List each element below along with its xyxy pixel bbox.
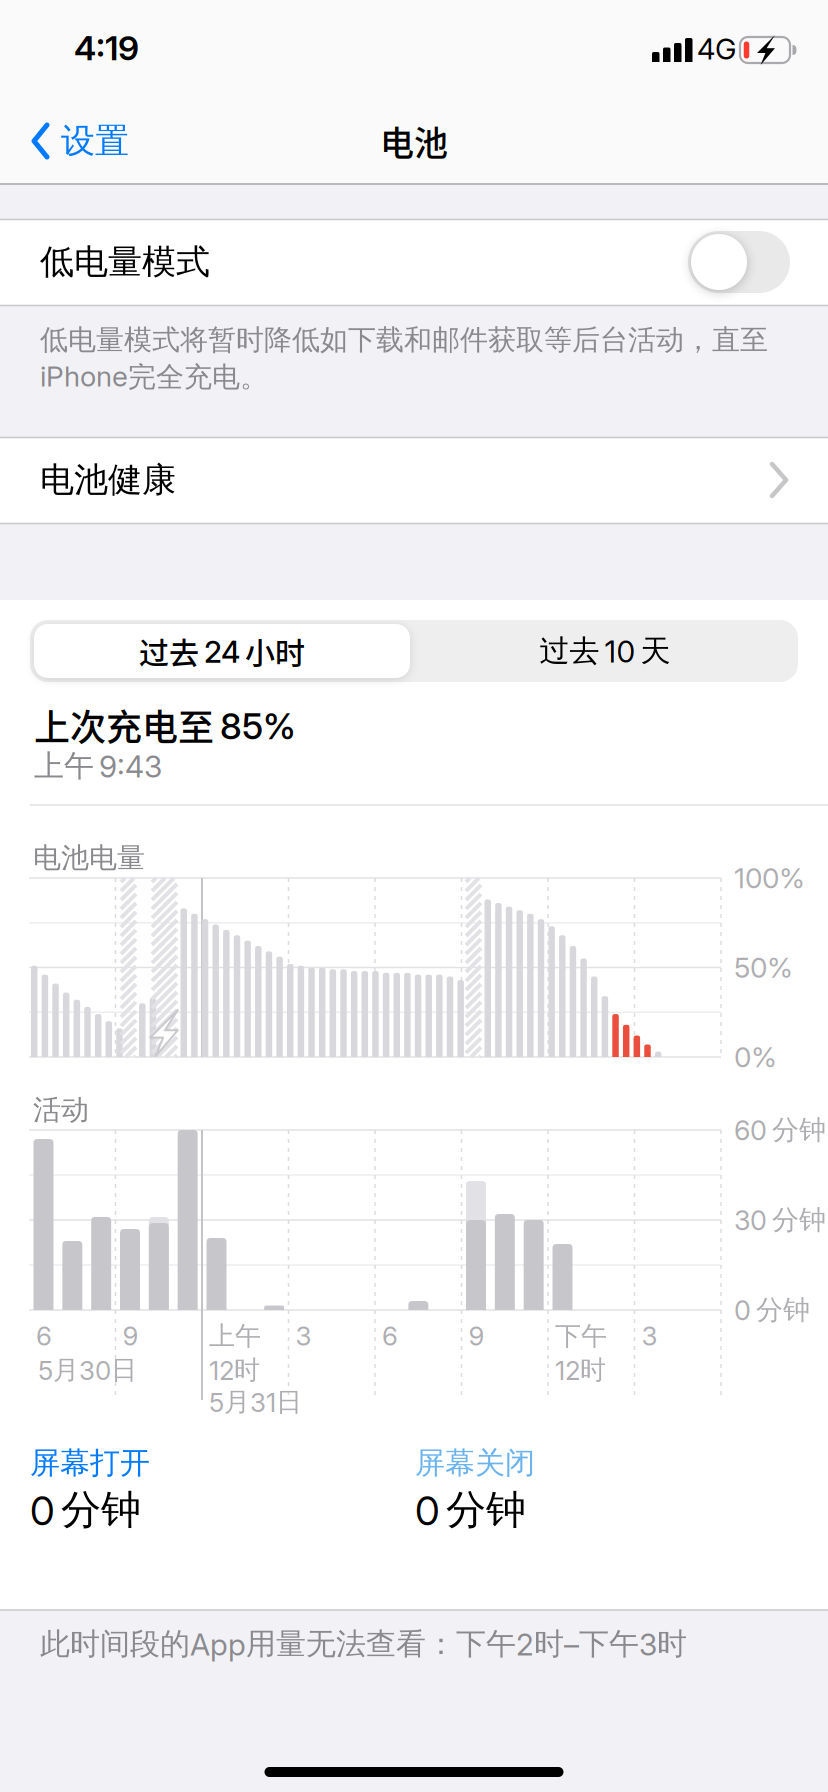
staticText: 设置 — [61, 120, 129, 162]
staticText: 100% — [734, 861, 805, 895]
staticText: 此时间段的App用量无法查看：下午2时–下午3时 — [40, 1625, 687, 1663]
staticText: 0 分钟 — [734, 1293, 810, 1327]
staticText: 0 分钟 — [415, 1485, 526, 1535]
staticText: 过去 10 天 — [539, 632, 670, 670]
button[interactable]: 返回设置 — [28, 111, 132, 171]
staticText: 30 分钟 — [734, 1203, 826, 1237]
button[interactable]: 过去 10 天 — [415, 622, 795, 680]
staticText: 0% — [734, 1040, 777, 1074]
staticText: 12时 — [209, 1354, 260, 1386]
staticText: 0 分钟 — [30, 1485, 141, 1535]
staticText: 上次充电至 85% — [34, 699, 296, 751]
staticText: iPhone完全充电。 — [40, 359, 268, 395]
staticText: 下午 — [555, 1320, 607, 1352]
staticText: 低电量模式将暂时降低如下载和邮件获取等后台活动，直至 — [40, 322, 768, 358]
staticText: 电池 — [380, 116, 448, 166]
staticText: 过去 24 小时 — [139, 629, 305, 673]
staticText: 电池电量 — [33, 840, 145, 876]
staticText: 60 分钟 — [734, 1113, 826, 1147]
staticText: 低电量模式 — [40, 241, 210, 283]
staticText: 6 — [36, 1320, 52, 1352]
staticText: 50% — [734, 951, 793, 984]
staticText: 屏幕打开 — [30, 1444, 150, 1482]
staticText: 5月30日 — [38, 1354, 137, 1386]
staticText: 3 — [641, 1320, 657, 1352]
button[interactable]: 低电量模式 — [688, 231, 790, 293]
staticText: 5月31日 — [209, 1386, 302, 1418]
staticText: 9 — [468, 1320, 484, 1352]
staticText: 屏幕关闭 — [415, 1444, 535, 1482]
staticText: 上午 9:43 — [34, 747, 162, 785]
staticText: 3 — [295, 1320, 311, 1352]
button[interactable]: 过去 24 小时 — [34, 624, 410, 678]
staticText: 电池健康 — [40, 459, 176, 501]
staticText: 9 — [122, 1320, 138, 1352]
staticText: 4G — [697, 31, 736, 67]
staticText: 上午 — [209, 1320, 261, 1352]
staticText: 12时 — [555, 1354, 606, 1386]
staticText: 活动 — [33, 1092, 89, 1128]
button[interactable]: 电池健康 — [0, 437, 828, 523]
staticText: 6 — [382, 1320, 398, 1352]
staticText: 4:19 — [74, 27, 139, 68]
